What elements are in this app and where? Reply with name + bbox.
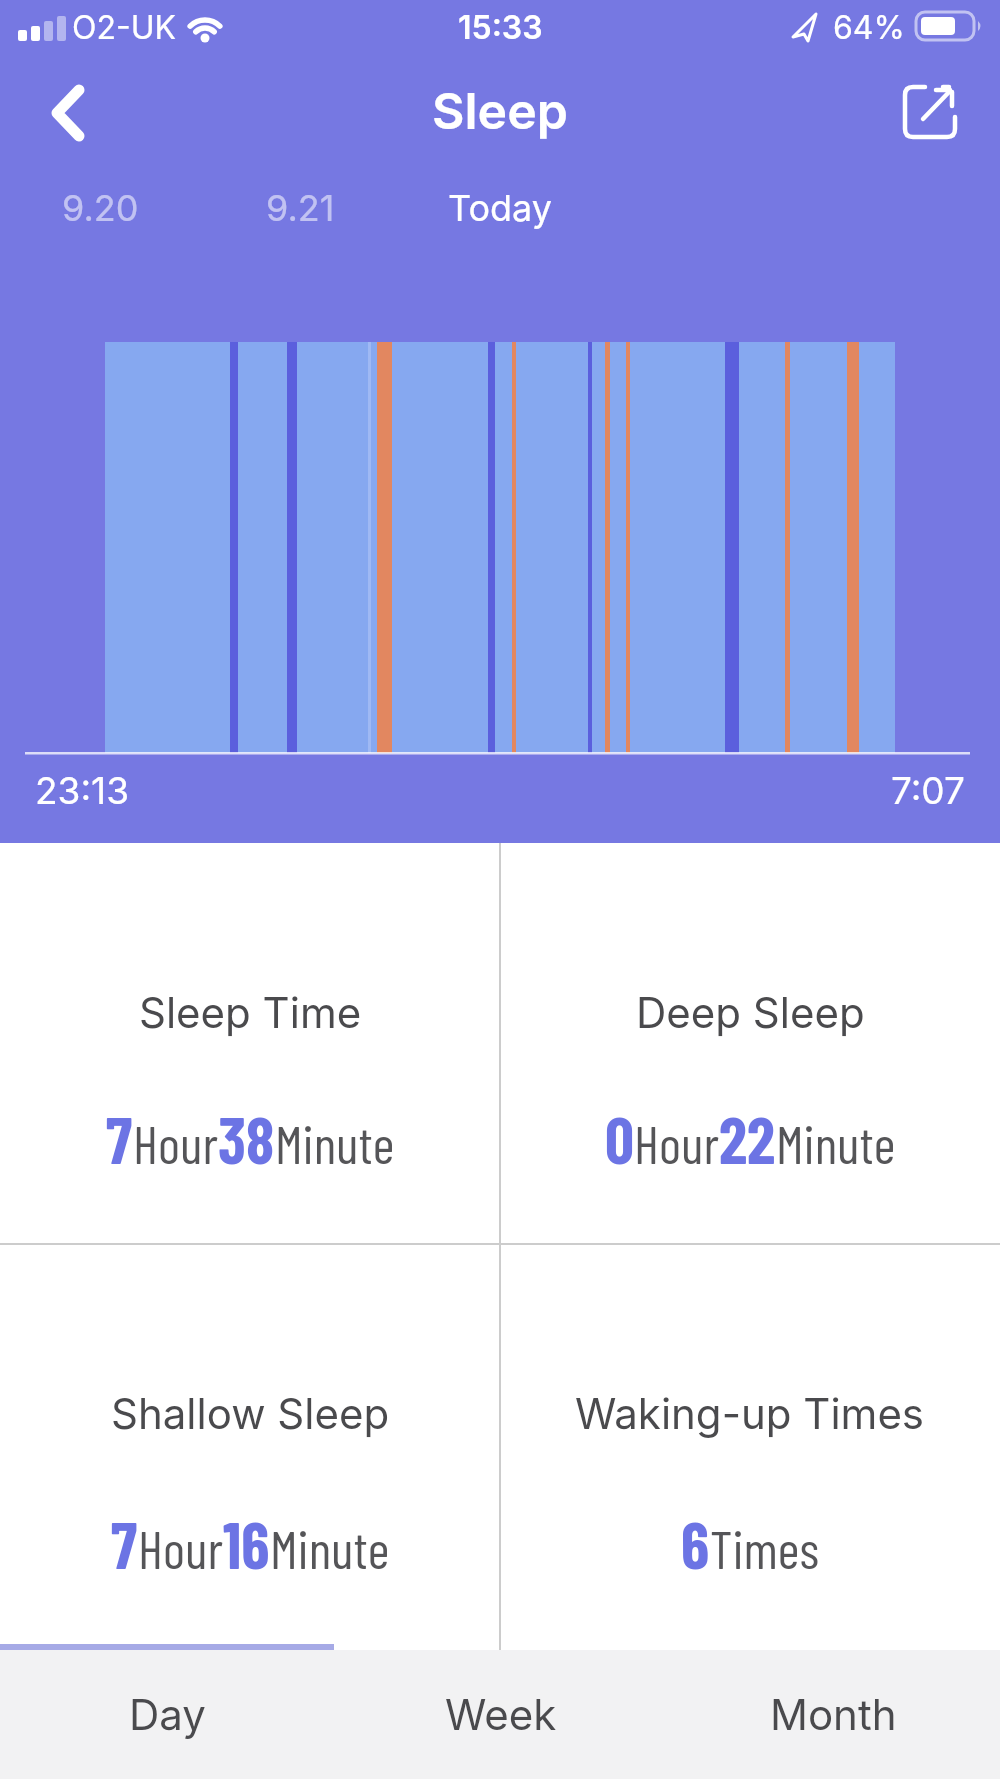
staticText: Deep Sleep <box>636 987 865 1038</box>
staticText: Hour <box>138 1516 223 1580</box>
staticText: Minute <box>275 1111 395 1175</box>
button[interactable]: Month <box>667 1650 1000 1779</box>
button[interactable]: Day <box>0 1650 334 1779</box>
staticText: Sleep <box>432 81 568 141</box>
staticText: 6 <box>681 1505 710 1582</box>
staticText: Waking-up Times <box>575 1388 925 1439</box>
staticText: Day <box>129 1689 206 1740</box>
staticText: 38 <box>218 1100 275 1177</box>
button[interactable] <box>25 65 111 160</box>
staticText: Minute <box>270 1516 390 1580</box>
staticText: 64% <box>833 8 905 47</box>
staticText: 9.21 <box>266 186 335 230</box>
button[interactable]: 9.20 <box>0 170 200 246</box>
staticText: Week <box>445 1689 557 1740</box>
staticText: 16 <box>223 1505 270 1582</box>
staticText: 7 <box>111 1505 138 1582</box>
staticText: Today <box>448 186 552 230</box>
staticText: 15:33 <box>458 8 543 47</box>
button[interactable]: 9.21 <box>200 170 400 246</box>
staticText: Sleep Time <box>139 987 362 1038</box>
staticText: Month <box>770 1689 897 1740</box>
staticText: 7 <box>106 1100 133 1177</box>
staticText: 9.20 <box>62 186 139 230</box>
staticText: Times <box>710 1516 820 1580</box>
staticText: 7:07 <box>891 768 965 813</box>
button[interactable]: Today <box>400 170 600 246</box>
staticText: Hour <box>133 1111 218 1175</box>
staticText: 23:13 <box>35 768 129 813</box>
staticText: 22 <box>719 1100 776 1177</box>
staticText: Hour <box>634 1111 719 1175</box>
staticText: 0 <box>605 1100 634 1177</box>
button[interactable]: Week <box>334 1650 667 1779</box>
staticText: O2-UK <box>72 8 177 47</box>
button[interactable] <box>903 85 957 139</box>
staticText: Shallow Sleep <box>111 1388 390 1439</box>
staticText: Minute <box>776 1111 896 1175</box>
